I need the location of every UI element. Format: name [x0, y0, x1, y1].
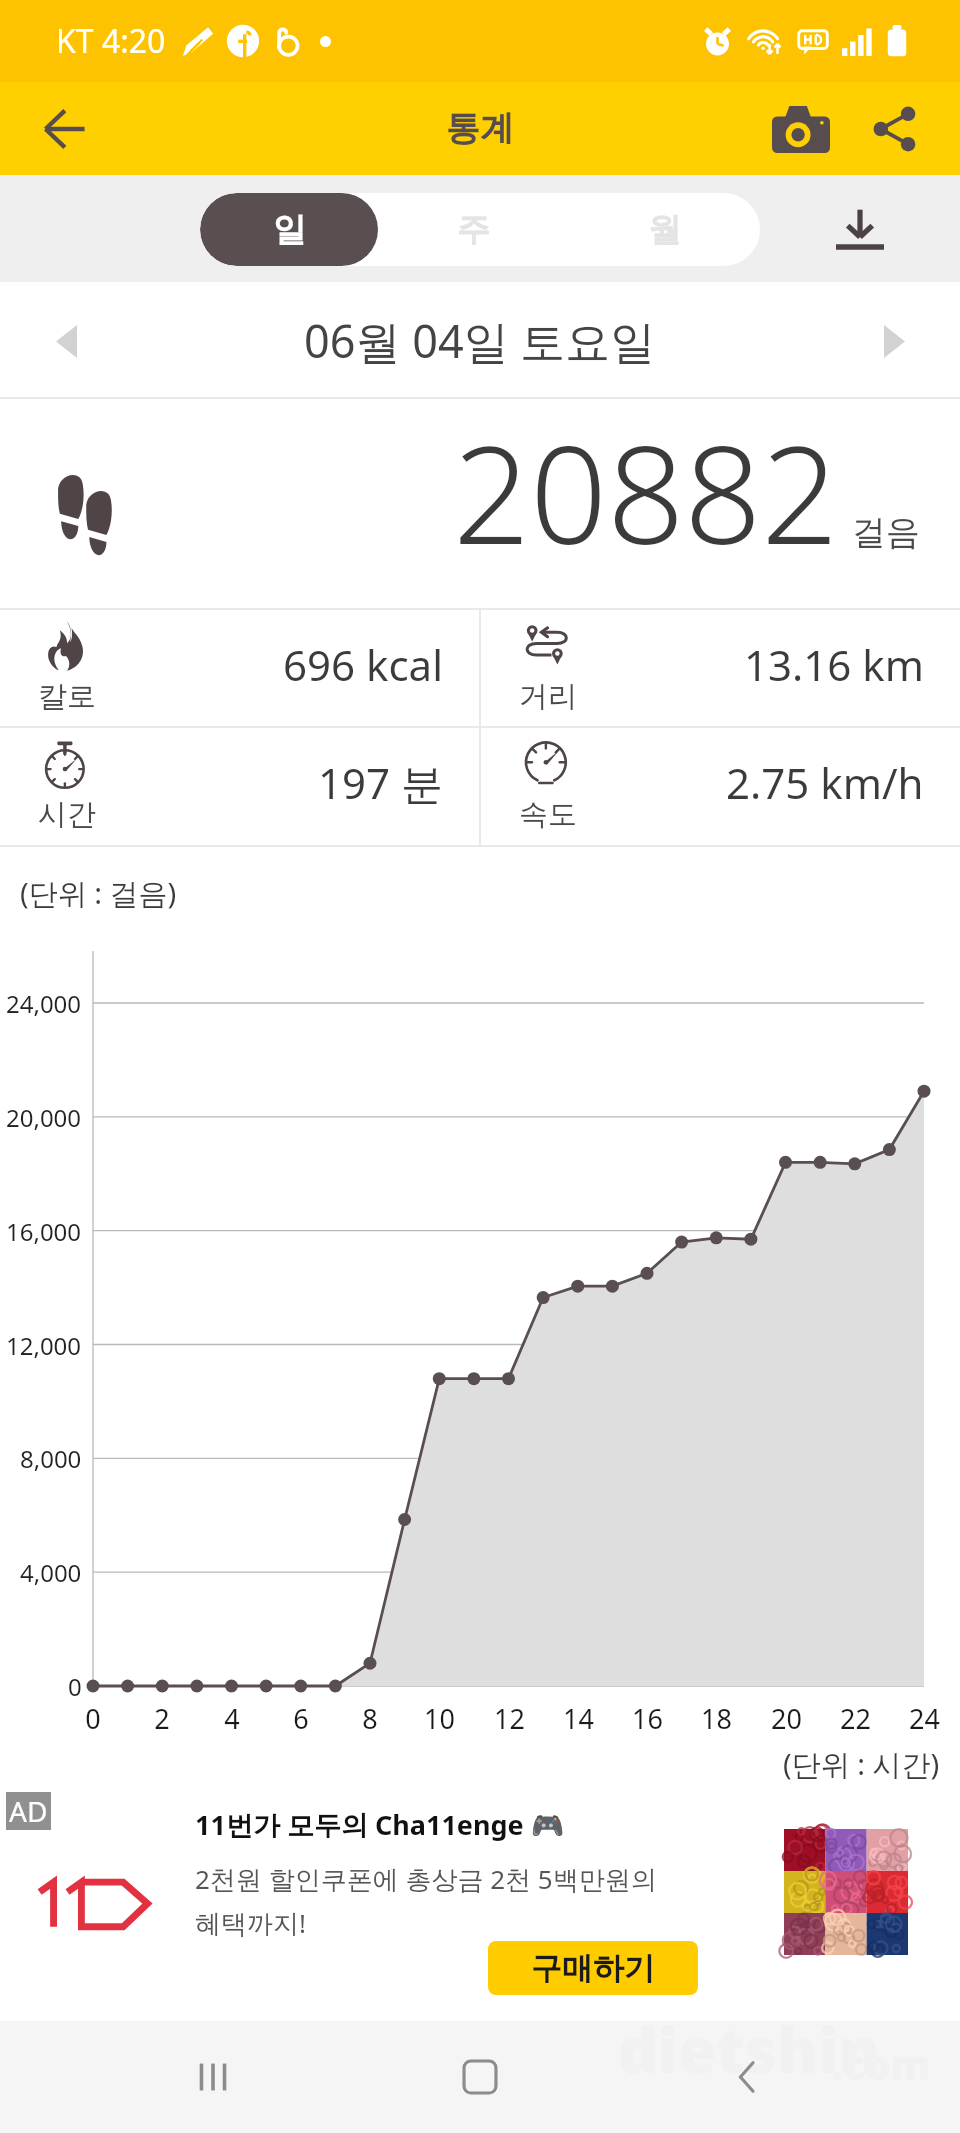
staticText: 13.16 km: [744, 636, 924, 693]
staticText: 12,000: [6, 1329, 82, 1362]
staticText: (단위 : 걸음): [20, 873, 177, 913]
staticText: 2천원 할인쿠폰에 총상금 2천 5백만원의: [195, 1861, 657, 1897]
staticText: 걸음: [852, 511, 920, 554]
staticText: 14: [563, 1700, 594, 1737]
button[interactable]: 월: [569, 193, 760, 266]
button[interactable]: Share: [850, 85, 938, 173]
staticText: 시간: [38, 796, 96, 833]
staticText: 칼로: [38, 678, 96, 715]
staticText: 20882: [453, 400, 839, 584]
staticText: 16: [632, 1700, 663, 1737]
staticText: 18: [701, 1700, 732, 1737]
staticText: KT 4:20: [56, 19, 166, 63]
button[interactable]: 구매하기: [488, 1941, 698, 1995]
staticText: 4: [224, 1700, 240, 1737]
button[interactable]: 거리: [481, 610, 960, 726]
button[interactable]: 칼로: [0, 610, 479, 726]
staticText: 20: [771, 1700, 802, 1737]
staticText: 일: [273, 209, 306, 251]
staticText: 10: [424, 1700, 455, 1737]
staticText: 24: [909, 1700, 940, 1737]
staticText: 12: [494, 1700, 525, 1737]
button[interactable]: 일: [200, 193, 378, 266]
staticText: 월: [648, 209, 681, 251]
staticText: 구매하기: [531, 1949, 655, 1988]
button[interactable]: 속도: [481, 728, 960, 845]
staticText: 6: [293, 1700, 309, 1737]
button[interactable]: Previous day: [31, 306, 101, 376]
staticText: 06월 04일 토요일: [304, 310, 656, 371]
staticText: 2: [154, 1700, 170, 1737]
button[interactable]: Download: [825, 194, 895, 264]
staticText: 0: [68, 1670, 82, 1703]
button[interactable]: Back: [693, 2022, 803, 2132]
staticText: 2.75 km/h: [726, 754, 924, 811]
button[interactable]: 주: [378, 193, 569, 266]
staticText: 696 kcal: [283, 636, 443, 693]
staticText: 속도: [519, 796, 577, 833]
staticText: 22: [840, 1700, 871, 1737]
staticText: 20,000: [6, 1101, 82, 1134]
staticText: 주: [457, 209, 490, 251]
staticText: 혜택까지!: [195, 1905, 306, 1941]
button[interactable]: Recents: [158, 2022, 268, 2132]
staticText: 24,000: [6, 987, 82, 1020]
button[interactable]: Next day: [859, 306, 929, 376]
button[interactable]: 시간: [0, 728, 479, 845]
staticText: 8,000: [20, 1442, 82, 1475]
button[interactable]: AD: [0, 1784, 960, 2021]
button[interactable]: Home: [425, 2022, 535, 2132]
staticText: AD: [9, 1792, 48, 1830]
staticText: 16,000: [6, 1215, 82, 1248]
staticText: 8: [362, 1700, 378, 1737]
staticText: 11번가 모두의 Cha11enge 🎮: [195, 1806, 565, 1843]
button[interactable]: Camera: [757, 85, 845, 173]
button[interactable]: Back: [20, 85, 108, 173]
staticText: dietshin: [618, 2007, 881, 2091]
staticText: dietshin: [618, 2007, 881, 2091]
staticText: (단위 : 시간): [783, 1744, 940, 1784]
staticText: 통계: [446, 107, 514, 150]
staticText: 거리: [519, 678, 577, 715]
staticText: 4,000: [20, 1556, 82, 1589]
staticText: 0: [85, 1700, 101, 1737]
staticText: 197 분: [318, 754, 443, 811]
